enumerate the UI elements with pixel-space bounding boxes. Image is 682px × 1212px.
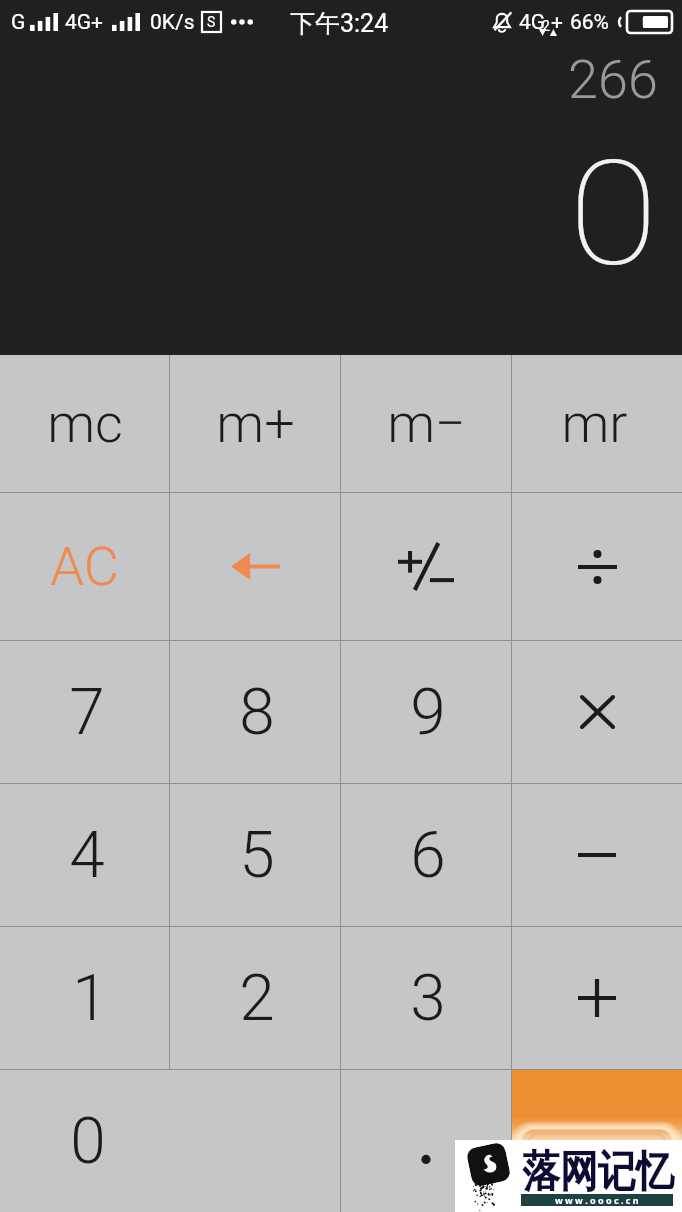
staticText: + <box>551 10 563 35</box>
button[interactable]: Backspace <box>170 493 340 640</box>
button[interactable]: 0 <box>0 1070 340 1212</box>
staticText: 下午3:24 <box>290 8 389 39</box>
staticText: 4 <box>69 818 105 893</box>
staticText: G <box>11 10 26 35</box>
button[interactable]: 6 <box>341 784 511 926</box>
button[interactable]: Plus <box>512 927 682 1069</box>
staticText: 6 <box>410 818 446 893</box>
button[interactable]: 1 <box>0 927 169 1069</box>
staticText: mc <box>47 392 123 455</box>
staticText: 66% <box>570 10 609 35</box>
button[interactable]: Multiply <box>512 641 682 783</box>
button[interactable]: 3 <box>341 927 511 1069</box>
button[interactable]: Decimal point <box>341 1070 511 1212</box>
staticText: mr <box>561 392 628 455</box>
button[interactable]: 9 <box>341 641 511 783</box>
staticText: m− <box>387 392 466 455</box>
staticText: 4G+ <box>65 10 104 35</box>
button[interactable]: 2 <box>170 927 340 1069</box>
staticText: 3 <box>410 961 446 1036</box>
staticText: S <box>207 14 216 30</box>
button[interactable]: Plus minus <box>341 493 511 640</box>
staticText: 266 <box>568 48 658 111</box>
staticText: AC <box>50 535 119 598</box>
staticText: 2 <box>239 961 275 1036</box>
staticText: 0 <box>3 1104 173 1179</box>
staticText: m+ <box>216 392 295 455</box>
staticText: 0 <box>569 129 659 299</box>
button[interactable]: m− <box>341 355 511 492</box>
button[interactable]: 7 <box>0 641 169 783</box>
button[interactable]: mr <box>512 355 682 492</box>
staticText: 5 <box>239 818 275 893</box>
button[interactable]: 5 <box>170 784 340 926</box>
staticText: 0K/s <box>150 10 195 35</box>
staticText: 4G <box>519 10 546 35</box>
staticText: 落网记忆 <box>522 1145 674 1200</box>
button[interactable]: 8 <box>170 641 340 783</box>
staticText: 7 <box>69 675 105 750</box>
button[interactable]: m+ <box>170 355 340 492</box>
button[interactable]: 4 <box>0 784 169 926</box>
button[interactable]: Divide <box>512 493 682 640</box>
button[interactable]: Equals <box>512 1070 682 1212</box>
button[interactable]: mc <box>0 355 169 492</box>
button[interactable]: AC <box>0 493 169 640</box>
button[interactable]: Minus <box>512 784 682 926</box>
staticText: 8 <box>239 675 275 750</box>
staticText: 9 <box>410 675 446 750</box>
staticText: w w w . o o o c . c n <box>555 1194 639 1206</box>
staticText: 2 <box>542 18 550 34</box>
staticText: 1 <box>72 961 108 1036</box>
